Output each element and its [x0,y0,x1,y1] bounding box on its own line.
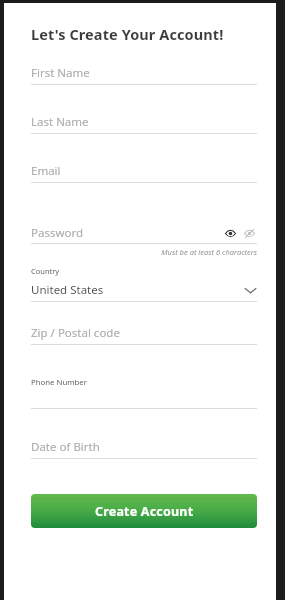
staticText: Email [31,163,61,179]
button[interactable]: Last Name [31,114,257,134]
button[interactable]: Hide password [241,225,257,241]
button[interactable]: Create Account [31,494,257,528]
button[interactable]: Password [31,225,222,241]
staticText: Last Name [31,114,89,130]
button[interactable]: Date of Birth [31,439,257,459]
staticText: Country [31,266,60,276]
button[interactable]: Zip / Postal code [31,325,257,345]
button[interactable]: Country selector [31,266,257,302]
button[interactable]: Email [31,163,257,183]
staticText: Let's Create Your Account! [31,24,224,44]
staticText: Date of Birth [31,439,100,455]
staticText: Create Account [95,503,194,520]
staticText: United States [31,282,244,298]
button[interactable]: Phone Number [31,377,257,409]
staticText: First Name [31,65,90,81]
staticText: Phone Number [31,377,87,388]
staticText: Must be at least 6 characters [31,247,257,257]
staticText: Zip / Postal code [31,325,120,341]
button[interactable]: Show password [222,225,238,241]
button[interactable]: First Name [31,65,257,85]
